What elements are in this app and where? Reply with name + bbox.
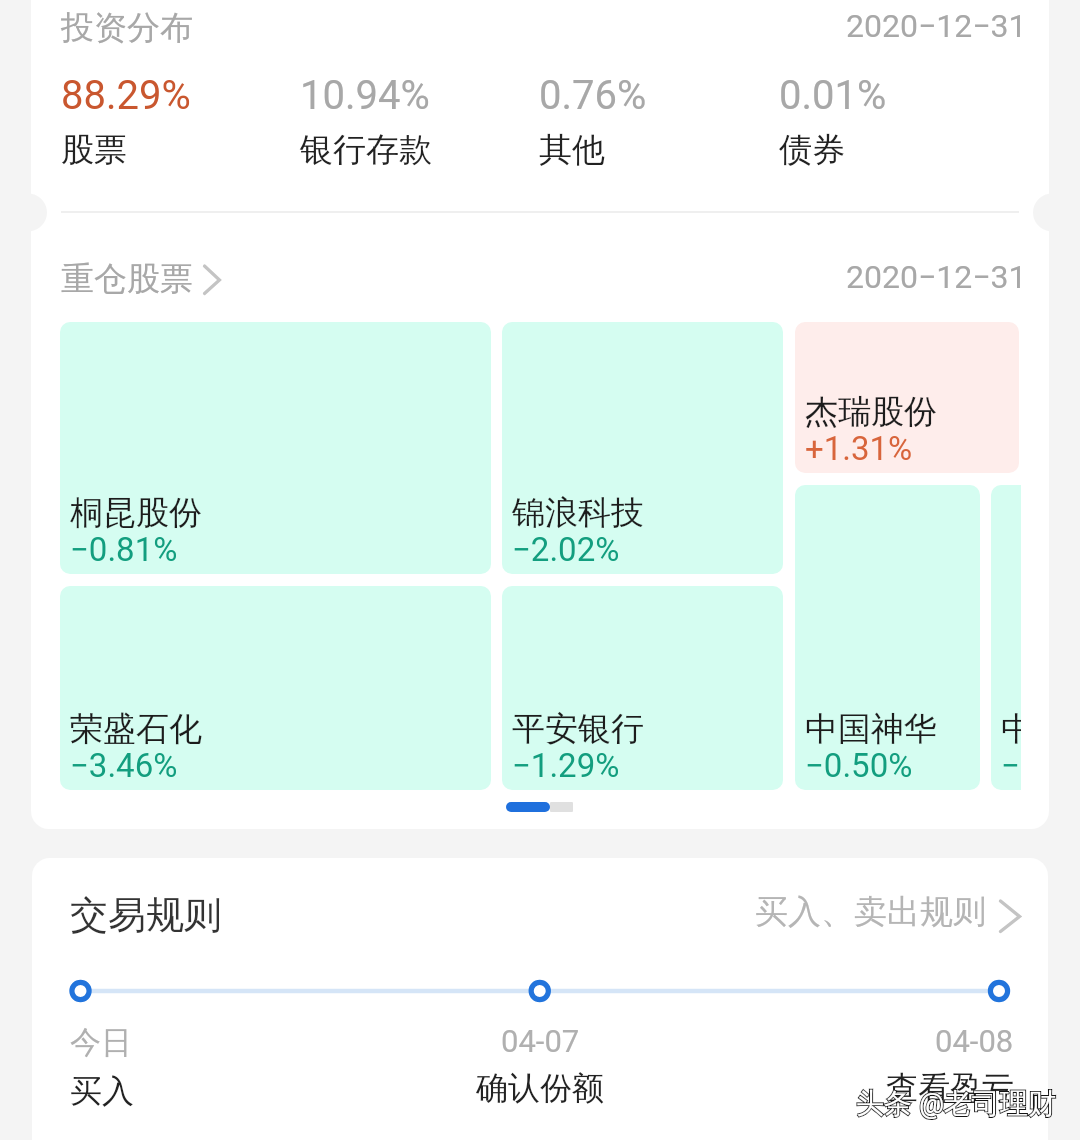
button[interactable]: 平安银行 <box>502 586 783 790</box>
staticText: −1.05% <box>1001 746 1021 785</box>
staticText: 2020−12−31 <box>846 258 1027 296</box>
staticText: 买入、卖出规则 <box>755 891 986 933</box>
staticText: 04-07 <box>501 1023 580 1059</box>
staticText: 头条 @老司理财 <box>856 1086 1057 1121</box>
staticText: 确认份额 <box>476 1068 604 1108</box>
staticText: 买入 <box>70 1071 134 1111</box>
button[interactable]: 荣盛石化 <box>60 586 491 790</box>
staticText: 平安银行 <box>512 708 644 750</box>
button[interactable]: 中国石化 <box>991 485 1021 790</box>
staticText: 查看盈亏 <box>886 1068 1014 1108</box>
staticText: 0.76% <box>539 72 647 119</box>
staticText: 杰瑞股份 <box>805 391 937 433</box>
staticText: 今日 <box>70 1023 132 1062</box>
staticText: 头条 @老司理财 <box>856 1086 1057 1121</box>
button[interactable]: Page indicator <box>506 802 573 812</box>
staticText: 88.29% <box>61 72 191 119</box>
staticText: −0.81% <box>70 530 178 569</box>
button[interactable]: 买入、卖出规则 <box>755 891 1020 933</box>
staticText: 锦浪科技 <box>512 492 644 534</box>
staticText: 中国石化 <box>1001 708 1021 750</box>
staticText: −1.29% <box>512 746 620 785</box>
staticText: −2.02% <box>512 530 620 569</box>
staticText: 重仓股票 <box>61 258 193 300</box>
staticText: 0.01% <box>779 72 887 119</box>
staticText: 投资分布 <box>61 7 193 49</box>
staticText: −3.46% <box>70 746 178 785</box>
staticText: 中国神华 <box>805 708 937 750</box>
staticText: 桐昆股份 <box>70 492 202 534</box>
staticText: 银行存款 <box>300 129 432 171</box>
staticText: −0.50% <box>805 746 913 785</box>
staticText: 其他 <box>539 129 605 171</box>
staticText: 债券 <box>779 129 845 171</box>
staticText: 04-08 <box>935 1023 1014 1059</box>
staticText: 交易规则 <box>70 891 222 939</box>
staticText: +1.31% <box>805 429 913 468</box>
staticText: 荣盛石化 <box>70 708 202 750</box>
button[interactable]: 杰瑞股份 <box>795 322 1019 473</box>
staticText: 10.94% <box>300 72 430 119</box>
staticText: 2020−12−31 <box>846 7 1027 45</box>
button[interactable]: 中国神华 <box>795 485 980 790</box>
button[interactable]: 锦浪科技 <box>502 322 783 574</box>
button[interactable]: 桐昆股份 <box>60 322 491 574</box>
staticText: 股票 <box>61 129 127 171</box>
button[interactable]: 重仓股票 <box>61 258 220 300</box>
